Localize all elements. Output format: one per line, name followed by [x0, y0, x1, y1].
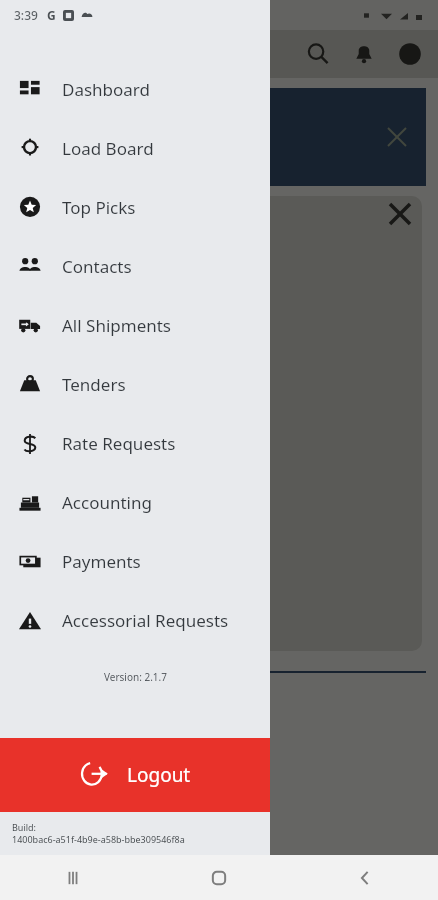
button[interactable]: Home [146, 855, 292, 900]
staticText: Power Only & Freight [26, 435, 161, 453]
other: Search [306, 42, 330, 66]
button[interactable]: Logout [0, 738, 270, 812]
staticText: Accessorial Requests [62, 609, 229, 632]
staticText: Version: 2.1.7 [104, 670, 167, 684]
other: Help [398, 42, 422, 66]
button[interactable]: Accounting [0, 473, 270, 532]
button[interactable]: Accessorial Requests [0, 591, 270, 650]
staticText: Load Board [62, 137, 154, 160]
staticText: Logout [127, 762, 191, 788]
other: Notifications [352, 42, 376, 66]
button[interactable]: Back [292, 855, 438, 900]
button[interactable]: Tenders [0, 355, 270, 414]
staticText: 3:39 [14, 7, 38, 23]
button[interactable]: All Shipments [0, 296, 270, 355]
staticText: G [47, 7, 56, 23]
other: Close banner [388, 128, 406, 146]
button[interactable]: Top Picks [0, 178, 270, 237]
button[interactable] [26, 594, 144, 626]
staticText: Payments [62, 550, 141, 573]
staticText: factored with NO fees! [26, 123, 163, 141]
button[interactable]: Dashboard [0, 60, 270, 119]
button[interactable]: Rate Requests [0, 414, 270, 473]
staticText: Use the "Details" button on [26, 495, 200, 513]
staticText: Tenders [62, 373, 126, 396]
button[interactable]: Load Board [0, 119, 270, 178]
staticText: Quick Loads! [26, 381, 147, 407]
button[interactable]: Recent apps [0, 855, 146, 900]
staticText: Learn more on Factoring [26, 149, 158, 165]
staticText: Top Picks [62, 196, 136, 219]
button[interactable]: Contacts [0, 237, 270, 296]
staticText: Accounting [62, 491, 152, 514]
button[interactable]: Payments [0, 532, 270, 591]
staticText: Dashboard [62, 78, 151, 101]
staticText: Contacts [62, 255, 132, 278]
staticText: Rate Requests [62, 432, 176, 455]
staticText: 1400bac6-a51f-4b9e-a58b-bbe309546f8a [12, 833, 185, 845]
button[interactable] [26, 551, 144, 585]
staticText: Build: [12, 821, 37, 833]
staticText: All Shipments [62, 314, 172, 337]
other: Close dialog [390, 204, 410, 224]
